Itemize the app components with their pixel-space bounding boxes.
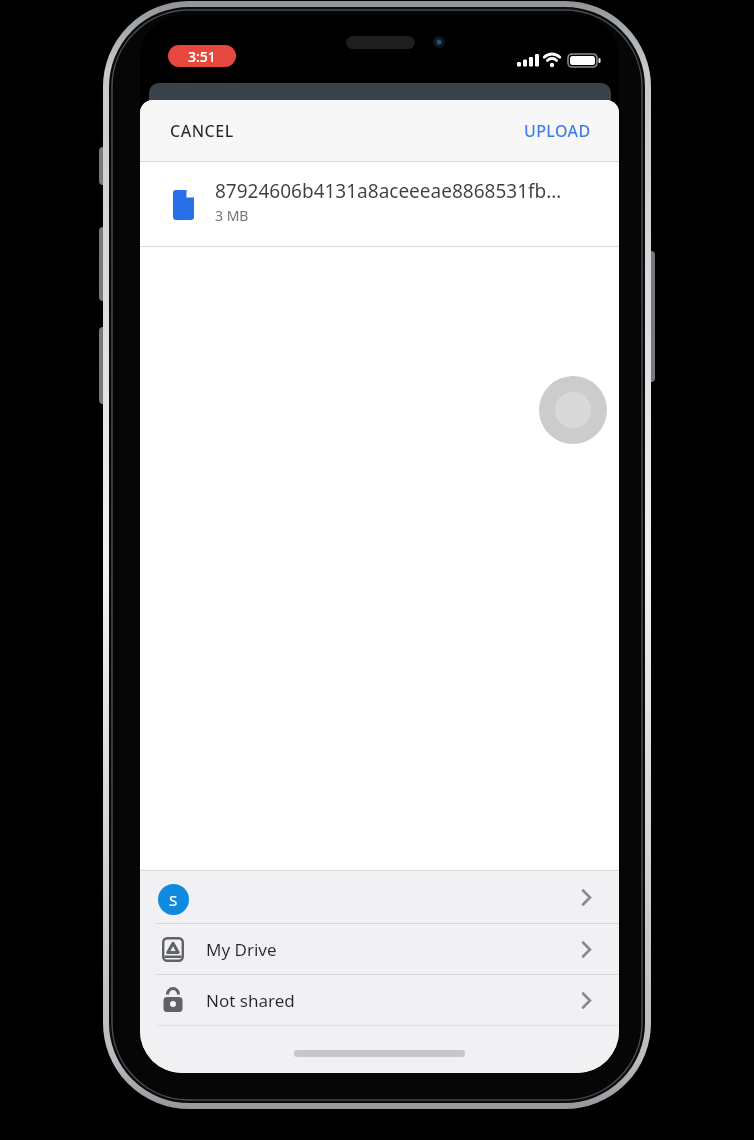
staticText: S — [169, 890, 178, 910]
button[interactable]: 3:51 — [168, 45, 236, 67]
staticText: 3:51 — [188, 47, 216, 66]
button[interactable]: S — [140, 871, 619, 923]
staticText: UPLOAD — [524, 120, 591, 142]
staticText: 3 MB — [215, 206, 249, 225]
button[interactable]: CANCEL — [170, 120, 234, 142]
staticText: 87924606b4131a8aceeeae8868531fb… — [215, 178, 562, 204]
button[interactable]: Not shared — [140, 975, 619, 1025]
staticText: CANCEL — [170, 120, 234, 142]
staticText: My Drive — [206, 938, 277, 961]
button[interactable]: 87924606b4131a8aceeeae8868531fb… — [140, 161, 619, 246]
button[interactable]: UPLOAD — [524, 120, 591, 142]
staticText: Not shared — [206, 989, 295, 1012]
button[interactable]: My Drive — [140, 924, 619, 974]
